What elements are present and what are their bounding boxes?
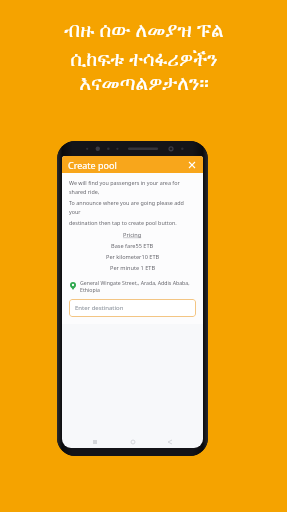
button[interactable]: Current location (69, 279, 196, 293)
button[interactable]: Create pool (62, 156, 203, 173)
other: Current location (70, 282, 76, 290)
staticText: Base fare55 ETB (111, 242, 154, 250)
staticText: ብዙ ሰው ለመያዝ ፑል (64, 16, 224, 43)
staticText: Create pool (68, 159, 117, 171)
staticText: Enter destination (75, 304, 124, 312)
staticText: Per minute 1 ETB (110, 264, 156, 272)
staticText: To announce where you are going please a… (69, 199, 196, 216)
button[interactable]: Recents (90, 437, 100, 447)
button[interactable]: Home (128, 437, 138, 447)
staticText: destination then tap to create pool butt… (69, 219, 177, 226)
staticText: We will find you passengers in your area… (69, 179, 196, 196)
staticText: እናመጣልዎታለን። (79, 74, 209, 94)
button[interactable]: Back (165, 437, 175, 447)
staticText: General Wingate Street,, Arada, Addis Ab… (80, 279, 196, 293)
staticText: Pricing (123, 231, 142, 239)
staticText: ሲከፍቱ ተሳፋሪዎችን (70, 45, 218, 72)
button[interactable]: Close (186, 159, 197, 170)
staticText: Per kilometer10 ETB (106, 253, 160, 261)
button[interactable]: Enter destination (69, 299, 196, 317)
